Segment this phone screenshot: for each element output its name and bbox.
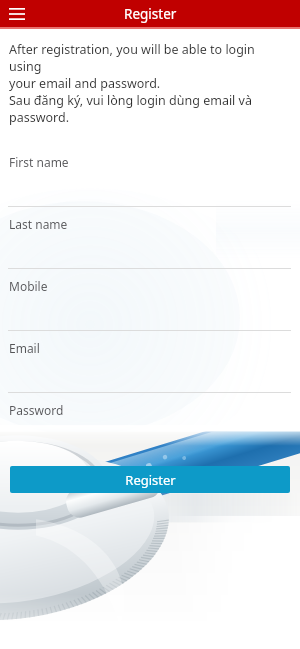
staticText: Last name — [9, 216, 68, 232]
staticText: After registration, you will be able to … — [9, 41, 288, 75]
button[interactable]: Email — [0, 331, 300, 393]
button[interactable]: First name — [0, 145, 300, 207]
staticText: Mobile — [9, 278, 48, 294]
staticText: Sau đăng ký, vui lòng login dùng email v… — [9, 92, 252, 109]
button[interactable]: Mobile — [0, 269, 300, 331]
staticText: password. — [9, 109, 70, 126]
staticText: Email — [9, 340, 40, 356]
staticText: Register — [124, 5, 177, 23]
button[interactable]: Register — [10, 466, 290, 493]
staticText: Register — [125, 471, 176, 489]
button[interactable]: Password — [0, 393, 300, 445]
staticText: First name — [9, 154, 69, 170]
staticText: your email and password. — [9, 75, 161, 92]
button[interactable]: Last name — [0, 207, 300, 269]
button[interactable]: Open navigation menu — [0, 0, 34, 27]
staticText: Password — [9, 402, 64, 418]
